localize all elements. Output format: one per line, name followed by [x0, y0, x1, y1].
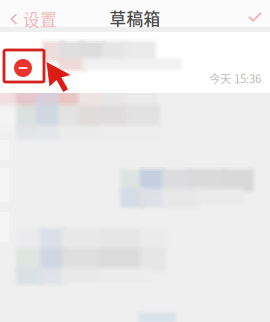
- button[interactable]: 删除: [0, 32, 32, 77]
- button[interactable]: 完成: [236, 0, 270, 28]
- button[interactable]: 设置: [0, 0, 63, 37]
- staticText: 设置: [23, 7, 57, 31]
- staticText: 草稿箱: [109, 6, 160, 30]
- staticText: 今天 15:36: [209, 70, 261, 86]
